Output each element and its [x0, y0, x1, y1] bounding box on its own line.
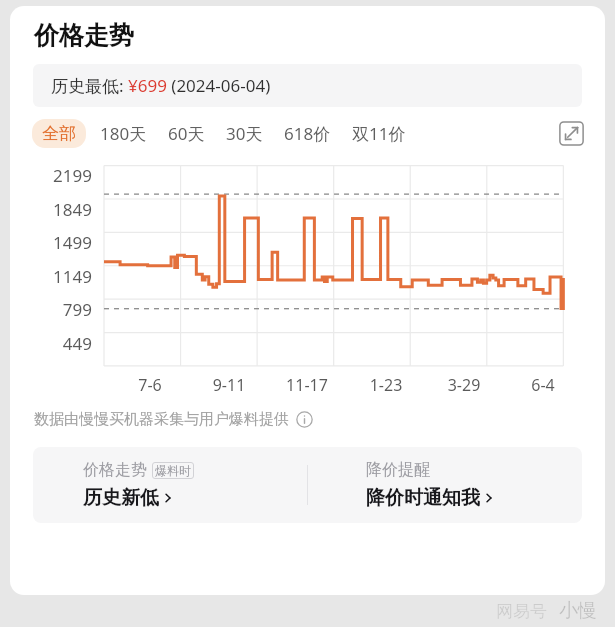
staticText: 历史新低 — [83, 486, 159, 510]
staticText: 449 — [32, 332, 92, 355]
staticText: 价格走势 — [34, 20, 134, 51]
staticText: 历史最低: ¥699 (2024-06-04) — [51, 74, 271, 97]
staticText: 降价时通知我 — [366, 486, 480, 510]
staticText: 799 — [32, 298, 92, 321]
staticText: 爆料时 — [155, 463, 191, 478]
staticText: 网易号 — [496, 601, 547, 622]
staticText: 降价提醒 — [366, 460, 430, 480]
staticText: 1849 — [32, 198, 92, 221]
staticText: 数据由慢慢买机器采集与用户爆料提供 — [34, 410, 289, 429]
button[interactable]: 历史最低: ¥699 (2024-06-04) — [33, 64, 582, 107]
staticText: 6-4 — [513, 374, 573, 396]
staticText: 3-29 — [434, 374, 494, 396]
button[interactable]: 全部 — [32, 119, 86, 148]
staticText: 价格走势 — [83, 460, 147, 480]
button[interactable]: 180天 — [98, 118, 149, 149]
staticText: 180天 — [100, 122, 147, 145]
staticText: 小慢 — [559, 599, 597, 623]
staticText: 60天 — [168, 122, 205, 145]
staticText: 双11价 — [352, 122, 406, 145]
button[interactable]: 618价 — [282, 118, 333, 149]
button[interactable]: 双11价 — [350, 118, 408, 149]
staticText: 7-6 — [120, 374, 180, 396]
button[interactable]: 价格走势 — [33, 447, 307, 523]
button[interactable]: 60天 — [166, 118, 207, 149]
staticText: 全部 — [42, 123, 76, 144]
button[interactable]: 30天 — [224, 118, 265, 149]
staticText: 11-17 — [277, 374, 337, 396]
staticText: 618价 — [284, 122, 331, 145]
staticText: 1499 — [32, 231, 92, 254]
staticText: 1149 — [32, 265, 92, 288]
button[interactable]: Expand chart — [555, 117, 587, 149]
button[interactable]: 降价提醒 — [308, 447, 582, 523]
staticText: 1-23 — [356, 374, 416, 396]
staticText: 9-11 — [199, 374, 259, 396]
staticText: 2199 — [32, 164, 92, 187]
staticText: 30天 — [226, 122, 263, 145]
